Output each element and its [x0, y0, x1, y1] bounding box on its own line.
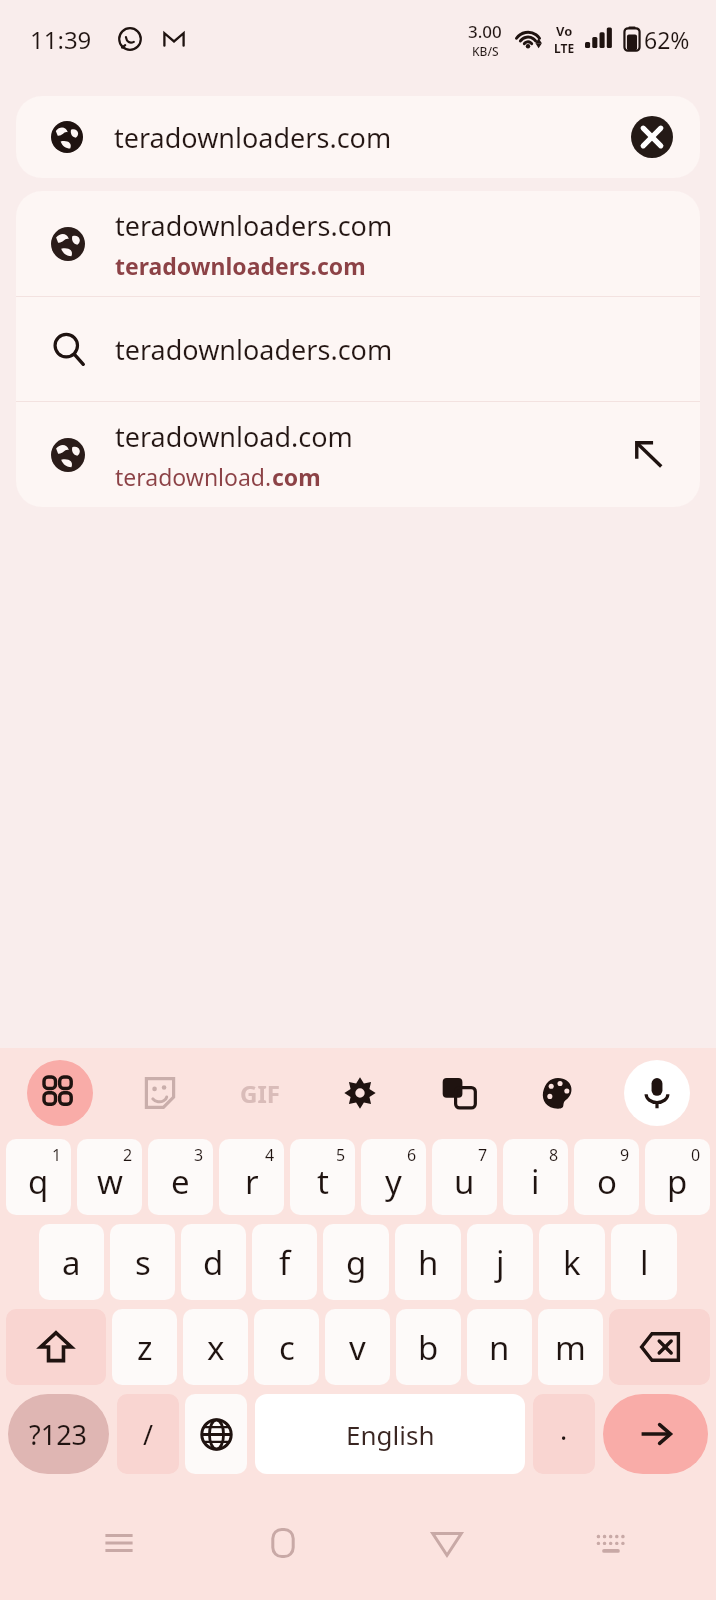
button[interactable]: Shift [6, 1309, 106, 1385]
staticText: c [279, 1325, 295, 1370]
button[interactable]: 9 [574, 1139, 639, 1215]
staticText: 4 [265, 1144, 275, 1166]
button[interactable]: ?123 [8, 1394, 109, 1474]
staticText: x [207, 1325, 225, 1370]
staticText: 1 [52, 1144, 62, 1166]
button[interactable]: / [117, 1394, 179, 1474]
staticText: teradownloaders.com [114, 119, 392, 156]
staticText: w [97, 1159, 123, 1204]
staticText: b [418, 1325, 439, 1370]
button[interactable]: n [467, 1309, 532, 1385]
button[interactable]: v [325, 1309, 390, 1385]
staticText: 3 [194, 1144, 204, 1166]
button[interactable]: English [255, 1394, 525, 1474]
staticText: u [454, 1159, 475, 1204]
staticText: teradownload.com [115, 418, 353, 455]
staticText: . [560, 1411, 568, 1448]
button[interactable]: teradownloaders.com [16, 96, 700, 178]
staticText: 9 [620, 1144, 630, 1166]
button[interactable]: 4 [219, 1139, 284, 1215]
button[interactable]: d [181, 1224, 246, 1300]
staticText: teradownloaders.com [115, 331, 393, 368]
staticText: 7 [478, 1144, 488, 1166]
button[interactable]: GIF [227, 1060, 293, 1126]
staticText: e [171, 1159, 190, 1204]
staticText: q [28, 1159, 49, 1204]
button[interactable]: Emoji categories [27, 1060, 93, 1126]
staticText: com [272, 461, 321, 492]
staticText: 2 [123, 1144, 133, 1166]
staticText: 11:39 [30, 23, 92, 56]
staticText: Vo [556, 22, 573, 40]
button[interactable]: 6 [361, 1139, 426, 1215]
button[interactable]: h [395, 1224, 461, 1300]
staticText: n [489, 1325, 510, 1370]
button[interactable]: Fill query [620, 426, 678, 484]
button[interactable]: Backspace [609, 1309, 710, 1385]
button[interactable]: 8 [503, 1139, 568, 1215]
staticText: 0 [691, 1144, 701, 1166]
staticText: ?123 [29, 1416, 88, 1453]
staticText: p [667, 1159, 688, 1204]
button[interactable]: Themes [525, 1060, 591, 1126]
staticText: s [135, 1240, 151, 1285]
staticText: / [143, 1416, 154, 1453]
button[interactable]: teradownloaders.com [16, 297, 700, 401]
button[interactable]: teradownload.com [16, 402, 700, 507]
button[interactable]: l [611, 1224, 677, 1300]
button[interactable]: x [183, 1309, 248, 1385]
staticText: m [555, 1325, 586, 1370]
button[interactable]: z [112, 1309, 177, 1385]
button[interactable]: Change language [185, 1394, 247, 1474]
staticText: l [640, 1240, 649, 1285]
button[interactable]: Go [603, 1394, 708, 1474]
button[interactable]: 3 [148, 1139, 213, 1215]
staticText: k [563, 1240, 581, 1285]
staticText: o [597, 1159, 617, 1204]
button[interactable]: Home [247, 1507, 319, 1579]
staticText: 6 [407, 1144, 417, 1166]
button[interactable]: 0 [645, 1139, 710, 1215]
button[interactable]: 7 [432, 1139, 497, 1215]
staticText: r [245, 1159, 259, 1204]
button[interactable]: Clear [626, 111, 678, 163]
button[interactable]: s [110, 1224, 175, 1300]
button[interactable]: Recents [83, 1507, 155, 1579]
staticText: z [137, 1325, 153, 1370]
button[interactable]: m [538, 1309, 603, 1385]
staticText: i [531, 1159, 540, 1204]
button[interactable]: 1 [6, 1139, 71, 1215]
button[interactable]: Voice input [624, 1060, 690, 1126]
button[interactable]: a [39, 1224, 104, 1300]
button[interactable]: f [252, 1224, 317, 1300]
staticText: f [279, 1240, 291, 1285]
staticText: h [418, 1240, 439, 1285]
button[interactable]: g [323, 1224, 389, 1300]
staticText: 3.00 [468, 20, 502, 43]
button[interactable]: Stickers [127, 1060, 193, 1126]
button[interactable]: . [533, 1394, 595, 1474]
staticText: LTE [554, 40, 575, 56]
staticText: g [346, 1240, 367, 1285]
button[interactable]: Back [411, 1507, 483, 1579]
staticText: t [317, 1159, 329, 1204]
staticText: j [496, 1240, 505, 1285]
staticText: teradownload. [115, 461, 272, 492]
staticText: teradownloaders.com [115, 207, 393, 244]
button[interactable]: b [396, 1309, 461, 1385]
staticText: GIF [240, 1077, 280, 1110]
button[interactable]: 5 [290, 1139, 355, 1215]
button[interactable]: j [467, 1224, 533, 1300]
button[interactable]: Settings [327, 1060, 393, 1126]
staticText: a [62, 1240, 81, 1285]
staticText: y [385, 1159, 402, 1204]
button[interactable]: Hide keyboard [575, 1507, 647, 1579]
button[interactable]: 2 [77, 1139, 142, 1215]
staticText: teradownloaders.com [115, 250, 366, 281]
button[interactable]: c [254, 1309, 319, 1385]
button[interactable]: teradownloaders.com [16, 191, 700, 296]
staticText: 62% [644, 24, 690, 55]
button[interactable]: Translate [426, 1060, 492, 1126]
button[interactable]: k [539, 1224, 605, 1300]
staticText: KB/S [472, 43, 499, 59]
